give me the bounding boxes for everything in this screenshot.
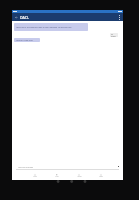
button[interactable]: Groups (68, 170, 90, 180)
staticText: DACL (20, 15, 30, 20)
staticText: Chats (55, 176, 59, 178)
staticText: Groups (77, 176, 82, 178)
staticText: Home (33, 176, 37, 178)
button[interactable]: Home (24, 170, 46, 180)
button[interactable]: Chats (46, 170, 68, 180)
staticText: Profile (99, 176, 103, 178)
staticText: ok thanks (111, 33, 117, 37)
staticText: Type your message (18, 166, 34, 168)
staticText: Hello! this is an automatic reply to you… (16, 26, 72, 28)
staticText: How can I help you? (16, 39, 33, 41)
button[interactable]: Back (12, 13, 20, 21)
button[interactable]: How can I help you? (14, 38, 40, 42)
button[interactable]: ok thanks (110, 33, 118, 37)
button[interactable]: Hello! this is an automatic reply to you… (14, 23, 88, 31)
button[interactable]: Profile (90, 170, 112, 180)
button[interactable]: More options (115, 13, 123, 21)
